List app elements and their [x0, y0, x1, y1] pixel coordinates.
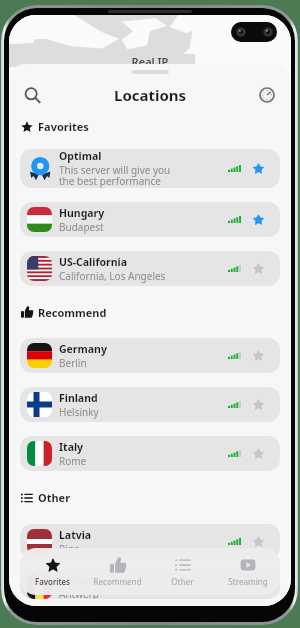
- staticText: Germany: [59, 342, 107, 356]
- button[interactable]: Latvia: [20, 524, 280, 559]
- staticText: Favorites: [35, 576, 70, 587]
- staticText: Other: [38, 490, 71, 505]
- button[interactable]: Optimal: [20, 149, 280, 188]
- staticText: Hungary: [59, 206, 105, 220]
- staticText: Antwerp: [59, 587, 99, 599]
- staticText: Streaming: [228, 576, 268, 587]
- button[interactable]: Other: [150, 548, 215, 595]
- staticText: Helsinky: [59, 405, 99, 419]
- staticText: California, Los Angeles: [59, 269, 166, 283]
- staticText: Belgium: [59, 573, 103, 587]
- staticText: US-California: [59, 255, 127, 269]
- button[interactable]: Recommend: [85, 548, 150, 595]
- button[interactable]: Hungary: [20, 202, 280, 237]
- button[interactable]: Belgium: [20, 573, 280, 599]
- button[interactable]: Favorites: [20, 548, 85, 595]
- button[interactable]: Search: [19, 82, 45, 108]
- button[interactable]: US-California: [20, 251, 280, 286]
- staticText: Budapest: [59, 220, 104, 234]
- staticText: Real IP: [9, 54, 291, 69]
- staticText: Rome: [59, 454, 87, 468]
- staticText: Latvia: [59, 528, 92, 542]
- staticText: Recommend: [93, 576, 142, 587]
- staticText: Other: [171, 576, 194, 587]
- staticText: Berlin: [59, 356, 87, 370]
- staticText: Recommend: [38, 305, 107, 320]
- staticText: Italy: [59, 440, 84, 454]
- staticText: Locations: [114, 85, 187, 105]
- staticText: Optimal: [59, 149, 102, 163]
- button[interactable]: Finland: [20, 387, 280, 422]
- staticText: Riga: [59, 542, 80, 556]
- button[interactable]: Streaming: [215, 548, 280, 595]
- staticText: Favorites: [38, 119, 89, 134]
- button[interactable]: Speed test: [254, 82, 280, 108]
- staticText: This server will give you the best perfo…: [59, 163, 171, 188]
- staticText: Finland: [59, 391, 98, 405]
- button[interactable]: Italy: [20, 436, 280, 471]
- button[interactable]: Germany: [20, 338, 280, 373]
